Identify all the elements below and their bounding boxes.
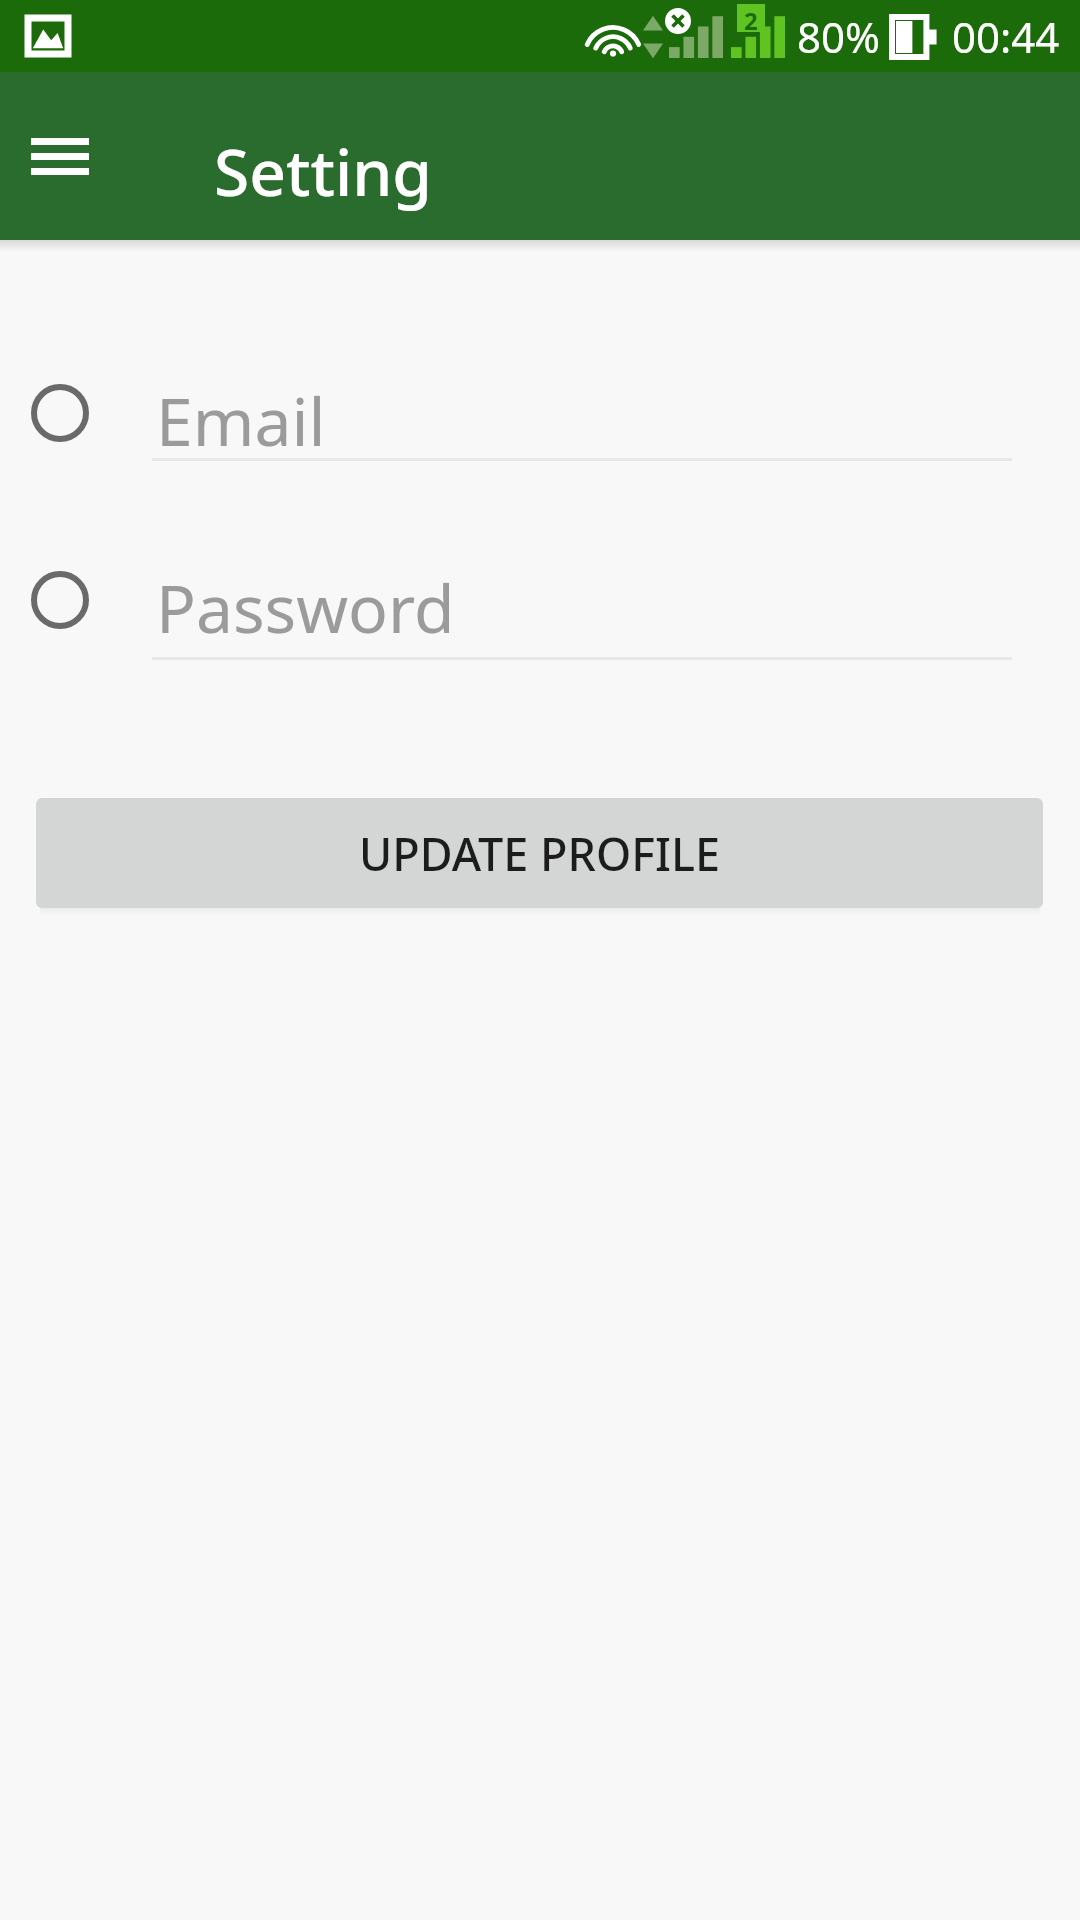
staticText: 00:44 <box>952 8 1060 65</box>
staticText: 2 <box>744 4 758 32</box>
button[interactable]: Email option <box>20 373 100 453</box>
staticText: Setting <box>214 128 433 215</box>
button[interactable]: UPDATE PROFILE <box>36 798 1043 908</box>
staticText: Password <box>156 562 455 652</box>
staticText: Email <box>156 375 326 465</box>
staticText: UPDATE PROFILE <box>359 823 720 884</box>
button[interactable]: Password <box>152 560 1012 666</box>
button[interactable]: Email <box>152 373 1012 479</box>
button[interactable]: Password option <box>20 560 100 640</box>
button[interactable]: Open navigation menu <box>24 120 96 192</box>
staticText: 80% <box>797 8 880 65</box>
